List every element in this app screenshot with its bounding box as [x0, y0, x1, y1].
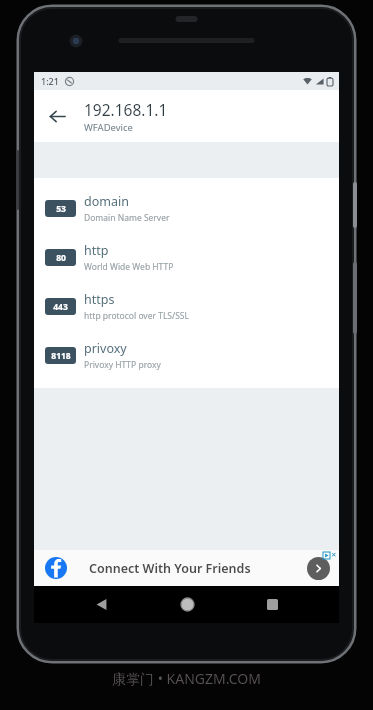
staticText: Domain Name Server [84, 212, 170, 224]
button[interactable]: 8118 [34, 331, 339, 380]
staticText: 8118 [51, 350, 71, 362]
staticText: 80 [56, 252, 66, 264]
staticText: Privoxy HTTP proxy [84, 359, 161, 371]
staticText: 康掌门 • KANGZM.COM [112, 669, 261, 688]
button[interactable]: Back [34, 93, 80, 139]
staticText: http [84, 242, 109, 259]
staticText: 1:21 [41, 75, 59, 87]
button[interactable]: Home [168, 586, 206, 623]
staticText: Connect With Your Friends [89, 560, 251, 577]
button[interactable]: Advertisement: Connect With Your Friends [34, 550, 339, 586]
button[interactable]: Open ad [307, 557, 330, 580]
staticText: privoxy [84, 340, 127, 357]
button[interactable]: 443 [34, 282, 339, 331]
button[interactable]: 80 [34, 233, 339, 282]
staticText: 443 [53, 301, 68, 313]
staticText: 53 [56, 203, 66, 215]
button[interactable]: 53 [34, 184, 339, 233]
staticText: WFADevice [84, 121, 133, 134]
staticText: World Wide Web HTTP [84, 261, 174, 273]
staticText: domain [84, 193, 129, 210]
staticText: https [84, 291, 115, 308]
staticText: ✕ [331, 551, 337, 559]
button[interactable]: Back [82, 586, 120, 623]
button[interactable]: Recent apps [253, 586, 291, 623]
staticText: 192.168.1.1 [84, 99, 168, 120]
staticText: http protocol over TLS/SSL [84, 310, 189, 322]
